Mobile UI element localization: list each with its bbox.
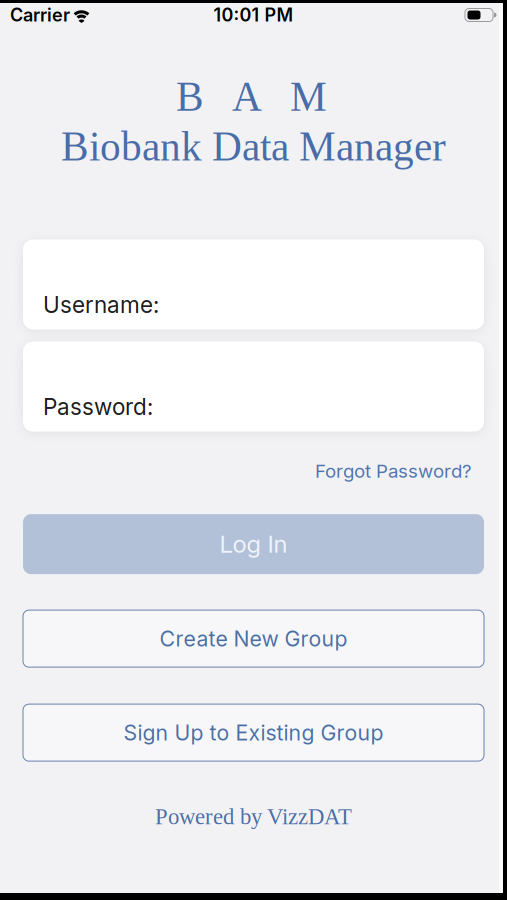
- staticText: B A M: [176, 74, 327, 120]
- button[interactable]: Create New Group: [23, 610, 484, 667]
- button[interactable]: Password:: [23, 341, 484, 431]
- staticText: Carrier: [10, 4, 70, 26]
- staticText: Powered by VizzDAT: [155, 804, 352, 829]
- button[interactable]: Log In: [23, 514, 484, 574]
- staticText: Forgot Password?: [315, 459, 472, 482]
- staticText: 10:01 PM: [213, 4, 293, 26]
- button[interactable]: Sign Up to Existing Group: [23, 704, 484, 761]
- button[interactable]: Forgot Password?: [315, 459, 472, 482]
- button[interactable]: Username:: [23, 239, 484, 329]
- staticText: Biobank Data Manager: [61, 124, 446, 170]
- staticText: Sign Up to Existing Group: [123, 720, 383, 745]
- staticText: Log In: [219, 530, 287, 559]
- staticText: Create New Group: [159, 626, 347, 651]
- staticText: Username:: [43, 291, 159, 318]
- staticText: Password:: [43, 393, 153, 420]
